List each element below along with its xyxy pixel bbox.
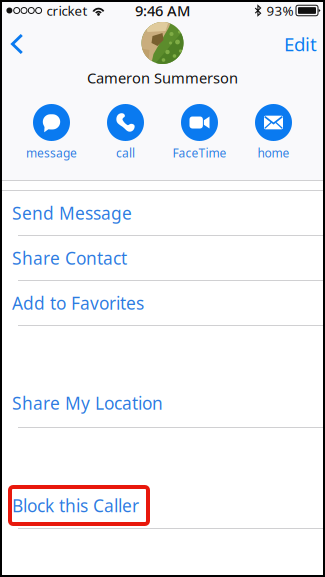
button[interactable]: Back	[2, 2, 32, 65]
button[interactable]: FaceTime	[162, 104, 236, 161]
button[interactable]: Share My Location	[2, 379, 323, 427]
staticText: Block this Caller	[12, 494, 139, 517]
button[interactable]: Block this Caller	[2, 483, 323, 528]
staticText: 93%	[266, 2, 293, 19]
staticText: Cameron Summerson	[87, 68, 238, 87]
staticText: Send Message	[12, 201, 132, 224]
staticText: Edit	[284, 32, 317, 56]
staticText: Share Contact	[12, 246, 127, 269]
staticText: FaceTime	[172, 145, 226, 161]
staticText: 9:46 AM	[135, 1, 190, 20]
button[interactable]: Add to Favorites	[2, 281, 323, 325]
staticText: Share My Location	[12, 391, 163, 414]
staticText: cricket	[46, 2, 87, 19]
staticText: message	[26, 145, 77, 161]
staticText: home	[257, 145, 289, 161]
button[interactable]: Edit	[284, 2, 323, 65]
staticText: Add to Favorites	[12, 291, 144, 314]
button[interactable]: message	[14, 104, 88, 161]
button[interactable]: call	[88, 104, 162, 161]
button[interactable]: Send Message	[2, 191, 323, 235]
staticText: call	[116, 145, 135, 161]
button[interactable]: Share Contact	[2, 236, 323, 280]
button[interactable]: home	[236, 104, 310, 161]
